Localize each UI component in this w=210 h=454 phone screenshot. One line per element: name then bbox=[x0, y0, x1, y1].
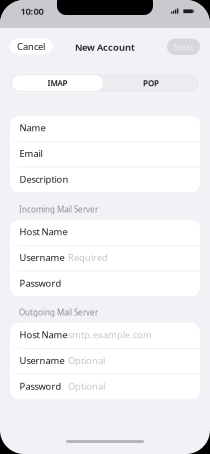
staticText: Email bbox=[19, 147, 42, 160]
staticText: Description bbox=[19, 173, 68, 185]
staticText: Username bbox=[19, 354, 64, 367]
staticText: POP bbox=[143, 78, 159, 88]
staticText: Password bbox=[19, 277, 61, 289]
button[interactable]: Email bbox=[10, 142, 200, 167]
staticText: New Account bbox=[75, 41, 135, 53]
staticText: Host Name bbox=[19, 328, 67, 341]
staticText: 10:00 bbox=[20, 5, 43, 17]
button[interactable]: IMAP bbox=[12, 75, 103, 91]
button[interactable]: Name bbox=[10, 116, 200, 141]
staticText: Password bbox=[19, 380, 61, 392]
staticText: Required bbox=[68, 251, 108, 264]
button[interactable]: Next bbox=[167, 38, 200, 55]
button[interactable]: Password bbox=[10, 374, 200, 399]
staticText: Cancel bbox=[17, 40, 45, 53]
staticText: Host Name bbox=[19, 225, 67, 238]
staticText: Optional bbox=[68, 380, 105, 392]
button[interactable]: Host Name bbox=[10, 220, 200, 245]
staticText: Username bbox=[19, 251, 64, 264]
staticText: smtp.example.com bbox=[68, 328, 152, 341]
button[interactable]: Description bbox=[10, 167, 200, 192]
button[interactable]: Username bbox=[10, 246, 200, 271]
button[interactable]: Username bbox=[10, 349, 200, 374]
button[interactable]: Password bbox=[10, 271, 200, 296]
button[interactable]: POP bbox=[105, 75, 196, 91]
staticText: Optional bbox=[68, 354, 105, 367]
button[interactable]: Cancel bbox=[9, 38, 52, 54]
staticText: Outgoing Mail Server bbox=[19, 307, 98, 318]
staticText: Incoming Mail Server bbox=[19, 204, 98, 215]
staticText: IMAP bbox=[47, 78, 67, 88]
staticText: Next bbox=[173, 41, 193, 53]
button[interactable]: Host Name bbox=[10, 323, 200, 348]
staticText: Name bbox=[19, 121, 45, 134]
